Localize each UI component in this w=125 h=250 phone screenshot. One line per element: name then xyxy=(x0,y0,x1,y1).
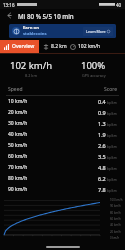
staticText: bp/km xyxy=(107,167,117,171)
staticText: 10 km/h xyxy=(8,98,28,105)
staticText: Score xyxy=(104,86,117,93)
staticText: 80 km/h xyxy=(8,175,28,182)
staticText: 90 km/h xyxy=(8,186,28,193)
staticText: 100% xyxy=(81,59,106,72)
button[interactable]: Back xyxy=(4,10,15,21)
staticText: bp/km xyxy=(107,112,117,116)
staticText: 90 km/h xyxy=(110,204,121,208)
button[interactable]: 60 km/h xyxy=(0,151,125,162)
staticText: 102 km/h xyxy=(10,59,53,72)
button[interactable]: 70 km/h xyxy=(0,162,125,173)
staticText: 2.6 xyxy=(98,142,106,149)
button[interactable]: 30 km/h xyxy=(0,118,125,129)
staticText: 70 km/h xyxy=(8,164,28,171)
staticText: 60 km/h xyxy=(110,217,121,221)
staticText: 20 km/h xyxy=(110,230,121,234)
staticText: Earn on xyxy=(23,25,39,31)
staticText: 0.4 xyxy=(98,98,106,105)
staticText: 0 km/h xyxy=(110,236,120,240)
button[interactable]: 20 km/h xyxy=(0,107,125,118)
staticText: Mi 80 % 5/5 10 min xyxy=(18,12,74,20)
staticText: bp/km xyxy=(107,145,117,149)
staticText: bp/km xyxy=(107,156,117,160)
button[interactable]: 50 km/h xyxy=(0,140,125,151)
staticText: 60 km/h xyxy=(8,153,28,160)
button[interactable]: 80 km/h xyxy=(0,173,125,184)
button[interactable]: 10 km/h xyxy=(0,96,125,107)
staticText: Speed xyxy=(8,86,23,93)
staticText: 100 km/h xyxy=(110,198,123,202)
staticText: bp/km xyxy=(107,101,117,105)
staticText: Learn More xyxy=(86,29,106,34)
staticText: 7.8 xyxy=(98,186,106,193)
staticText: 102 km/h xyxy=(78,43,101,50)
staticText: 1.3 xyxy=(98,120,106,127)
button[interactable]: 90 km/h xyxy=(0,184,125,195)
staticText: Overview xyxy=(12,43,35,50)
button[interactable]: Learn More xyxy=(83,27,113,36)
button[interactable]: Earn on xyxy=(9,24,116,38)
staticText: stablecoins xyxy=(23,31,47,37)
staticText: bp/km xyxy=(107,134,117,138)
staticText: 13:16 xyxy=(3,2,15,8)
staticText: 20 km/h xyxy=(8,109,28,116)
staticText: 4.8 xyxy=(98,164,106,171)
staticText: 3.5 xyxy=(98,153,106,160)
staticText: 80 km/h xyxy=(110,211,121,215)
staticText: bp/km xyxy=(107,178,117,182)
button[interactable]: 40 km/h xyxy=(0,129,125,140)
staticText: 8.2 km xyxy=(25,73,37,78)
staticText: 40 km/h xyxy=(8,131,28,138)
staticText: bp/km xyxy=(107,123,117,127)
staticText: 40 xyxy=(116,2,122,8)
staticText: GPS accuracy xyxy=(82,73,106,78)
staticText: 6.2 xyxy=(98,175,106,182)
staticText: 30 km/h xyxy=(8,120,28,127)
staticText: bp/km xyxy=(107,189,117,193)
staticText: 0.9 xyxy=(98,109,106,116)
staticText: 8.2 km xyxy=(51,43,67,50)
staticText: 50 km/h xyxy=(8,142,28,149)
button[interactable]: Overview xyxy=(0,40,39,53)
staticText: 40 km/h xyxy=(110,223,121,227)
staticText: 1.9 xyxy=(98,131,106,138)
